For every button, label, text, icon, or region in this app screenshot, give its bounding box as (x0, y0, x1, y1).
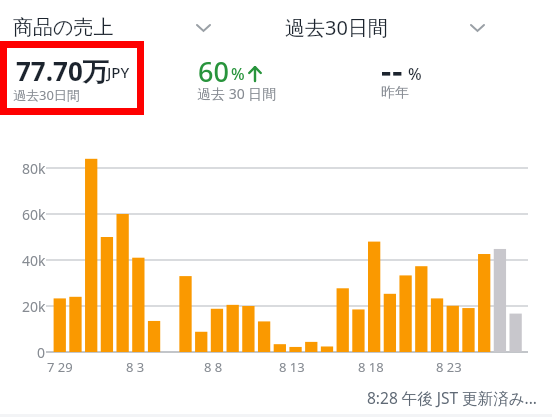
staticText: 77.70万 (16, 53, 109, 89)
staticText: 60 (198, 53, 229, 90)
staticText: 8 13 (279, 358, 305, 376)
staticText: 過去 30 日間 (197, 84, 277, 103)
staticText: 0 (37, 343, 46, 362)
staticText: 8:28 午後 JST 更新済み... (367, 387, 538, 408)
staticText: 8 23 (436, 358, 462, 376)
staticText: 8 18 (358, 358, 384, 376)
button[interactable]: 過去30日間 (285, 14, 490, 44)
button[interactable] (380, 58, 450, 106)
staticText: % (231, 63, 245, 85)
staticText: JPY (107, 62, 130, 82)
button[interactable]: 商品の売上 (13, 15, 213, 45)
staticText: 40k (22, 251, 46, 270)
staticText: 昨年 (381, 84, 409, 102)
staticText: 8 3 (126, 358, 145, 376)
staticText: 商品の売上 (13, 15, 114, 40)
staticText: 60k (22, 205, 46, 224)
staticText: 20k (22, 297, 46, 316)
staticText: 8 8 (204, 358, 223, 376)
button[interactable]: 77.70万 (0, 41, 144, 115)
staticText: 過去30日間 (13, 86, 80, 104)
staticText: 7 29 (47, 358, 73, 376)
button[interactable] (197, 58, 307, 106)
staticText: 80k (22, 159, 46, 178)
staticText: 過去30日間 (285, 14, 388, 41)
staticText: % (408, 63, 422, 85)
